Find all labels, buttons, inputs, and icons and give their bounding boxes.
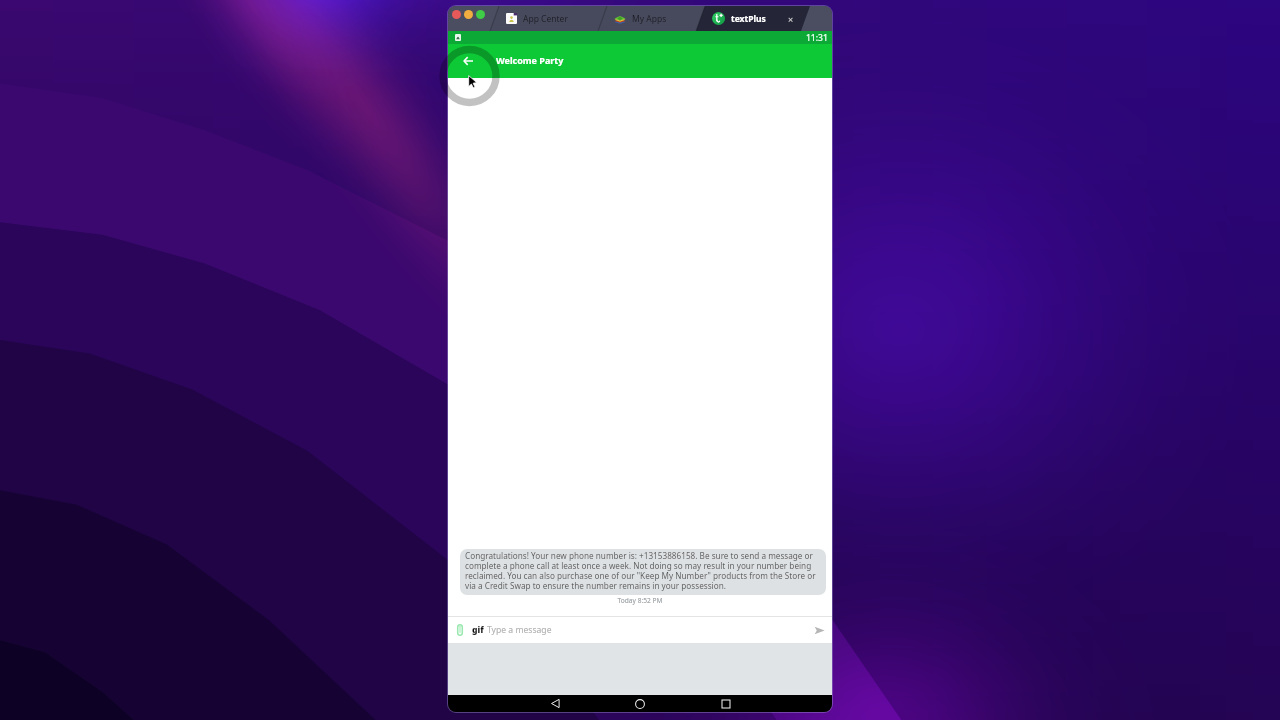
staticText: App Center (523, 13, 568, 25)
staticText: 11:31 (806, 32, 828, 44)
button[interactable]: Back (456, 49, 480, 73)
button[interactable]: Back (545, 695, 565, 712)
button[interactable]: App Center (490, 6, 598, 31)
staticText: textPlus (731, 13, 766, 25)
button[interactable]: Recents (716, 695, 736, 712)
staticText: Type a message (487, 624, 811, 636)
button[interactable]: My Apps (598, 6, 696, 31)
button[interactable]: Close window (452, 10, 461, 19)
button[interactable]: Home (630, 695, 650, 712)
staticText: Welcome Party (496, 54, 564, 66)
button[interactable]: Maximise window (476, 10, 485, 19)
button[interactable]: textPlus (696, 6, 801, 31)
button[interactable]: Congratulations! Your new phone number i… (460, 549, 826, 595)
button[interactable]: Send a GIF (470, 622, 485, 638)
button[interactable]: × (788, 13, 794, 25)
staticText: My Apps (632, 13, 667, 25)
button[interactable]: Attach file (452, 622, 468, 638)
button[interactable]: Send (811, 622, 827, 638)
button[interactable]: Minimise window (464, 10, 473, 19)
staticText: gif (472, 624, 484, 636)
staticText: Congratulations! Your new phone number i… (465, 550, 821, 592)
staticText: Today 8:52 PM (448, 596, 832, 605)
